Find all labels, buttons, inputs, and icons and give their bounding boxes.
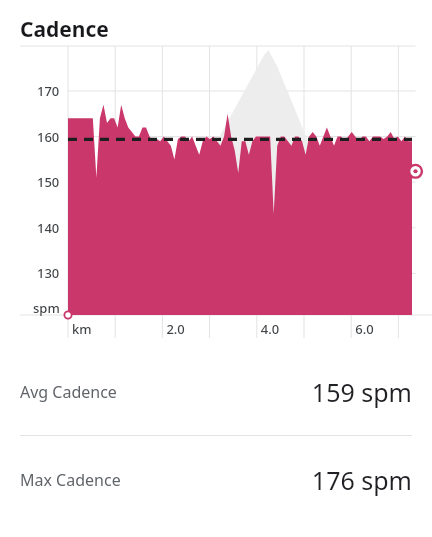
staticText: Avg Cadence (20, 381, 117, 403)
button[interactable]: Cadence over distance chart (0, 44, 432, 348)
button[interactable]: Avg Cadence (0, 348, 432, 435)
staticText: 159 spm (311, 375, 412, 409)
staticText: 176 spm (311, 463, 412, 497)
staticText: Cadence (20, 15, 109, 44)
staticText: Max Cadence (20, 469, 121, 491)
button[interactable]: Max Cadence (0, 436, 432, 523)
